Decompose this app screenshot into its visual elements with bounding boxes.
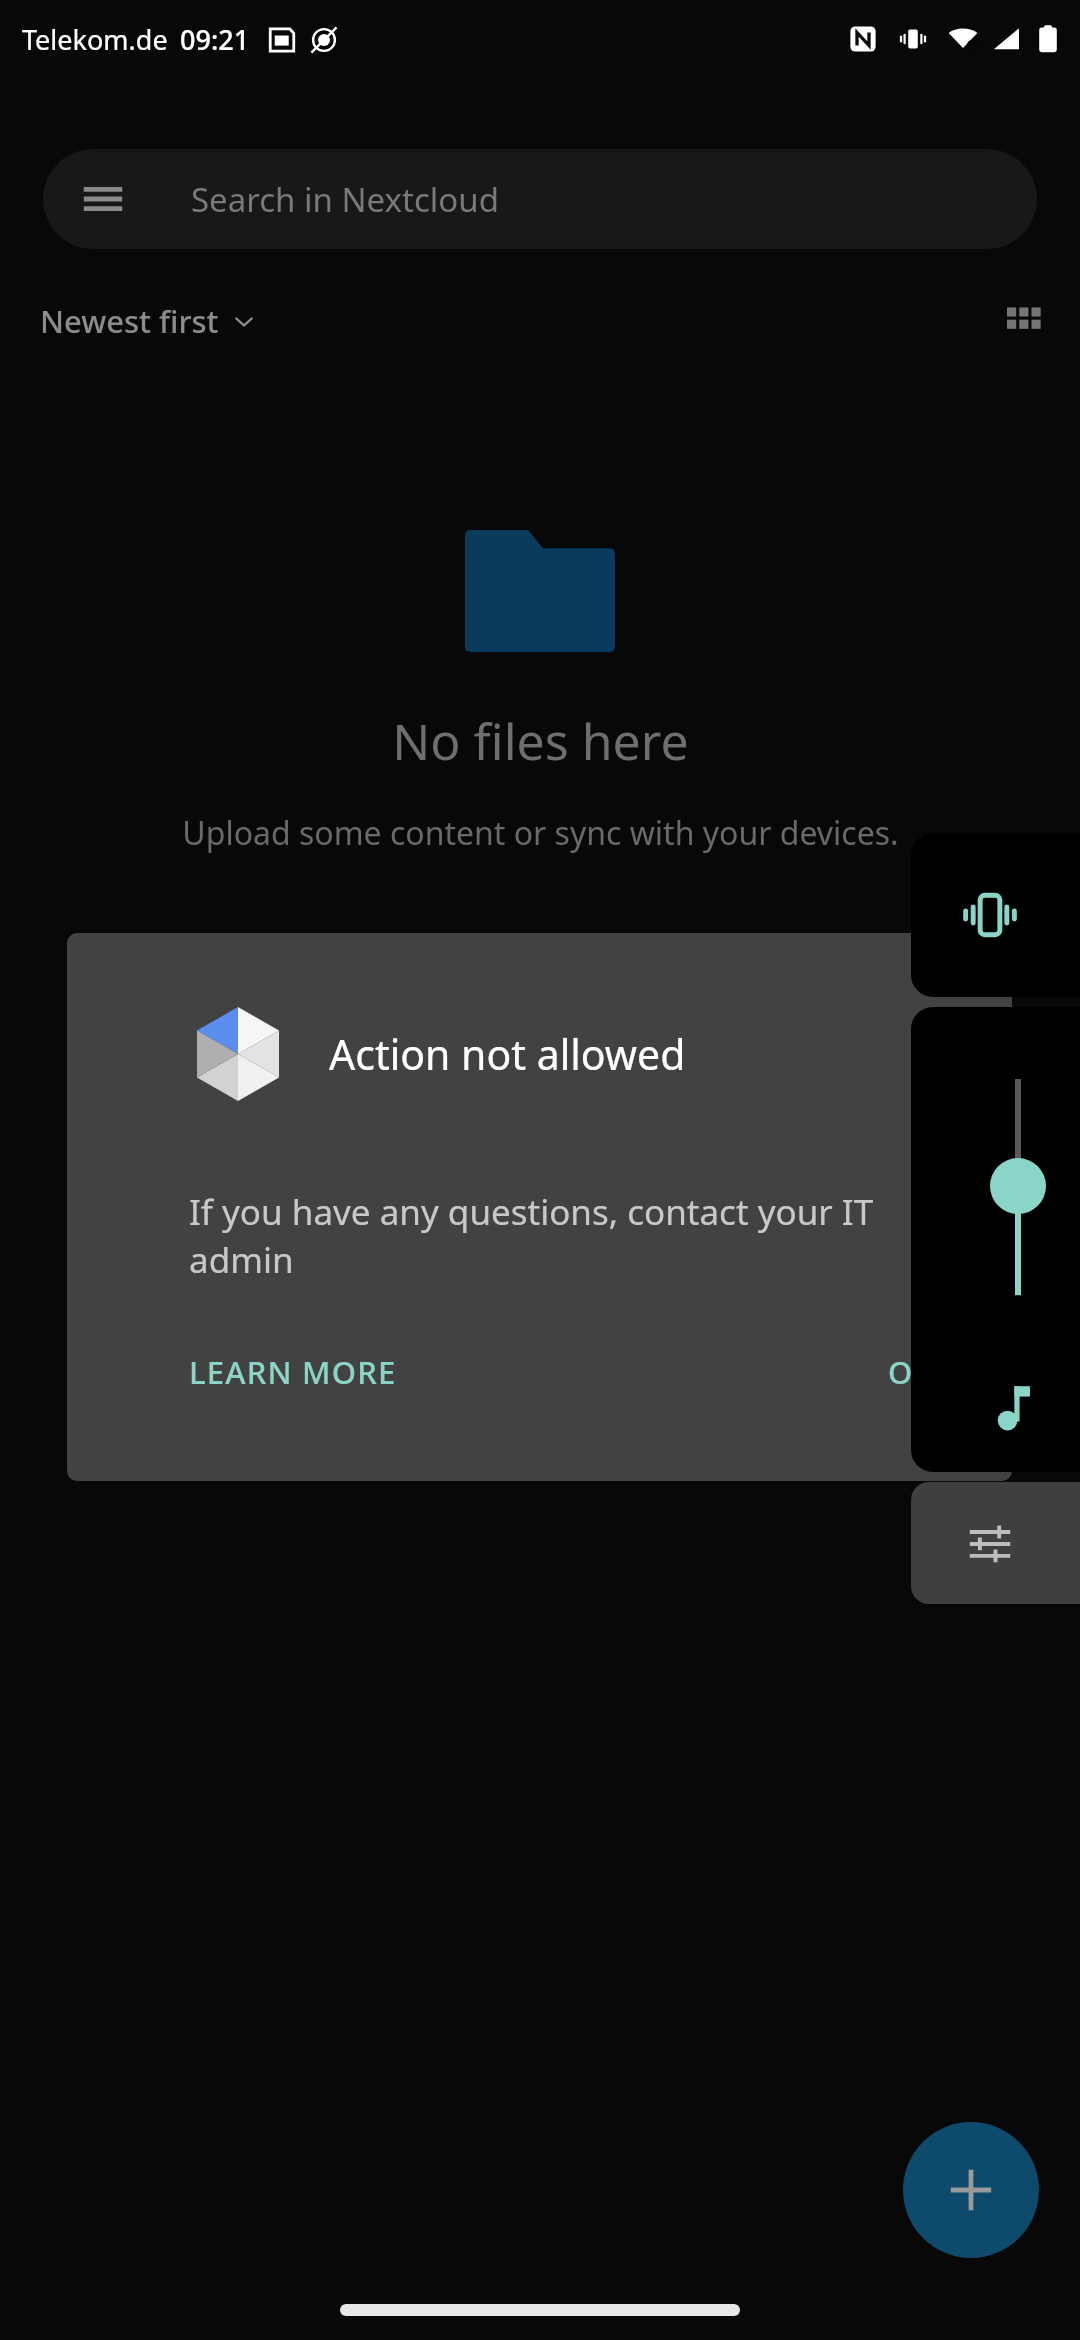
button[interactable]: Open navigation menu [80,176,126,222]
staticText: Action not allowed [329,1026,686,1082]
staticText: LEARN MORE [189,1351,397,1393]
button[interactable]: OK [862,1333,961,1411]
button[interactable]: Open navigation menu [43,149,1037,249]
button[interactable]: Newest first [34,292,261,350]
button[interactable]: Media volume [968,1007,1068,1472]
staticText: OK [888,1351,935,1393]
staticText: 09:21 [180,21,250,58]
button[interactable]: Volume settings [911,1482,1080,1604]
staticText: Upload some content or sync with your de… [182,811,899,855]
button[interactable]: Switch to grid view [992,289,1056,353]
button[interactable]: Add [903,2122,1039,2258]
button[interactable]: Ringer mode: vibrate [911,833,1080,997]
staticText: No files here [392,707,689,775]
staticText: Telekom.de [22,21,168,58]
staticText: Newest first [40,300,219,342]
staticText: Search in Nextcloud [191,177,499,222]
button[interactable]: LEARN MORE [163,1333,423,1411]
staticText: If you have any questions, contact your … [189,1188,949,1283]
